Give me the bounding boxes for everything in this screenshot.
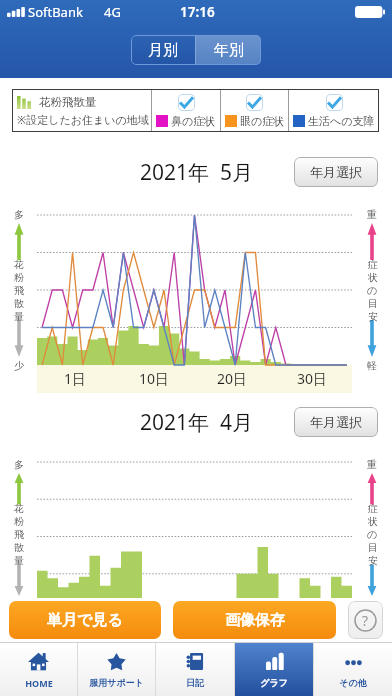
staticText: 30日 <box>297 369 328 388</box>
staticText: その他 <box>339 677 367 688</box>
staticText: 多 <box>14 208 24 221</box>
staticText: 軽 <box>367 359 377 372</box>
button[interactable]: グラフ <box>235 643 313 696</box>
staticText: 2021年 4月 <box>140 408 253 437</box>
button[interactable]: 年月選択 <box>294 157 378 187</box>
staticText: 量 <box>14 310 24 323</box>
staticText: 日記 <box>186 677 204 688</box>
staticText: 年月選択 <box>310 414 362 430</box>
staticText: 月別 <box>148 41 178 60</box>
staticText: 少 <box>14 359 24 372</box>
staticText: 安 <box>368 554 378 567</box>
staticText: 多 <box>14 458 24 471</box>
button[interactable]: 日記 <box>156 643 234 696</box>
staticText: 10日 <box>139 369 170 388</box>
staticText: グラフ <box>260 677 288 688</box>
staticText: 量 <box>14 554 24 567</box>
button[interactable]: 年月選択 <box>294 407 378 437</box>
button[interactable]: 生活への支障 <box>289 94 379 132</box>
button[interactable]: Help <box>348 601 383 639</box>
staticText: 17:16 <box>180 3 215 21</box>
staticText: 少 <box>14 598 24 611</box>
staticText: 飛 <box>14 528 24 541</box>
staticText: 20日 <box>217 369 248 388</box>
staticText: 目 <box>368 297 378 310</box>
staticText: 鼻の症状 <box>171 114 216 128</box>
staticText: SoftBank <box>28 3 83 21</box>
staticText: 服用サポート <box>89 677 144 688</box>
button[interactable]: 画像保存 <box>173 601 336 639</box>
staticText: 散 <box>14 297 24 310</box>
staticText: 生活への支障 <box>308 114 375 128</box>
staticText: 目 <box>368 541 378 554</box>
staticText: 症 <box>368 258 378 271</box>
button[interactable]: 服用サポート <box>78 643 155 696</box>
staticText: 粉 <box>14 515 24 528</box>
staticText: の <box>367 284 378 297</box>
staticText: 症 <box>368 502 378 515</box>
staticText: ? <box>362 611 369 630</box>
button[interactable]: 月別 <box>131 35 195 65</box>
staticText: 花粉飛散量 <box>39 95 97 109</box>
staticText: 状 <box>368 271 378 284</box>
button[interactable]: その他 <box>314 643 392 696</box>
staticText: 軽 <box>367 598 377 611</box>
button[interactable]: 単月で見る <box>9 601 161 639</box>
button[interactable]: 年別 <box>196 35 261 65</box>
staticText: 安 <box>368 310 378 323</box>
staticText: 単月で見る <box>47 611 123 630</box>
staticText: 年別 <box>214 41 244 60</box>
staticText: 画像保存 <box>225 611 285 630</box>
staticText: 1日 <box>64 369 87 388</box>
staticText: 飛 <box>14 284 24 297</box>
staticText: 散 <box>14 541 24 554</box>
staticText: 花 <box>14 258 24 271</box>
staticText: 眼の症状 <box>240 114 285 128</box>
staticText: 4G <box>104 3 121 21</box>
staticText: 重 <box>367 458 377 471</box>
staticText: 状 <box>368 515 378 528</box>
staticText: 年月選択 <box>310 164 362 180</box>
staticText: 2021年 5月 <box>140 158 253 187</box>
button[interactable]: 鼻の症状 <box>152 94 220 132</box>
staticText: 粉 <box>14 271 24 284</box>
button[interactable]: 眼の症状 <box>221 94 288 132</box>
staticText: 重 <box>367 208 377 221</box>
staticText: ※設定したお住まいの地域 <box>17 112 149 127</box>
staticText: 花 <box>14 502 24 515</box>
staticText: HOME <box>25 677 53 689</box>
button[interactable]: HOME <box>0 643 77 696</box>
staticText: の <box>367 528 378 541</box>
